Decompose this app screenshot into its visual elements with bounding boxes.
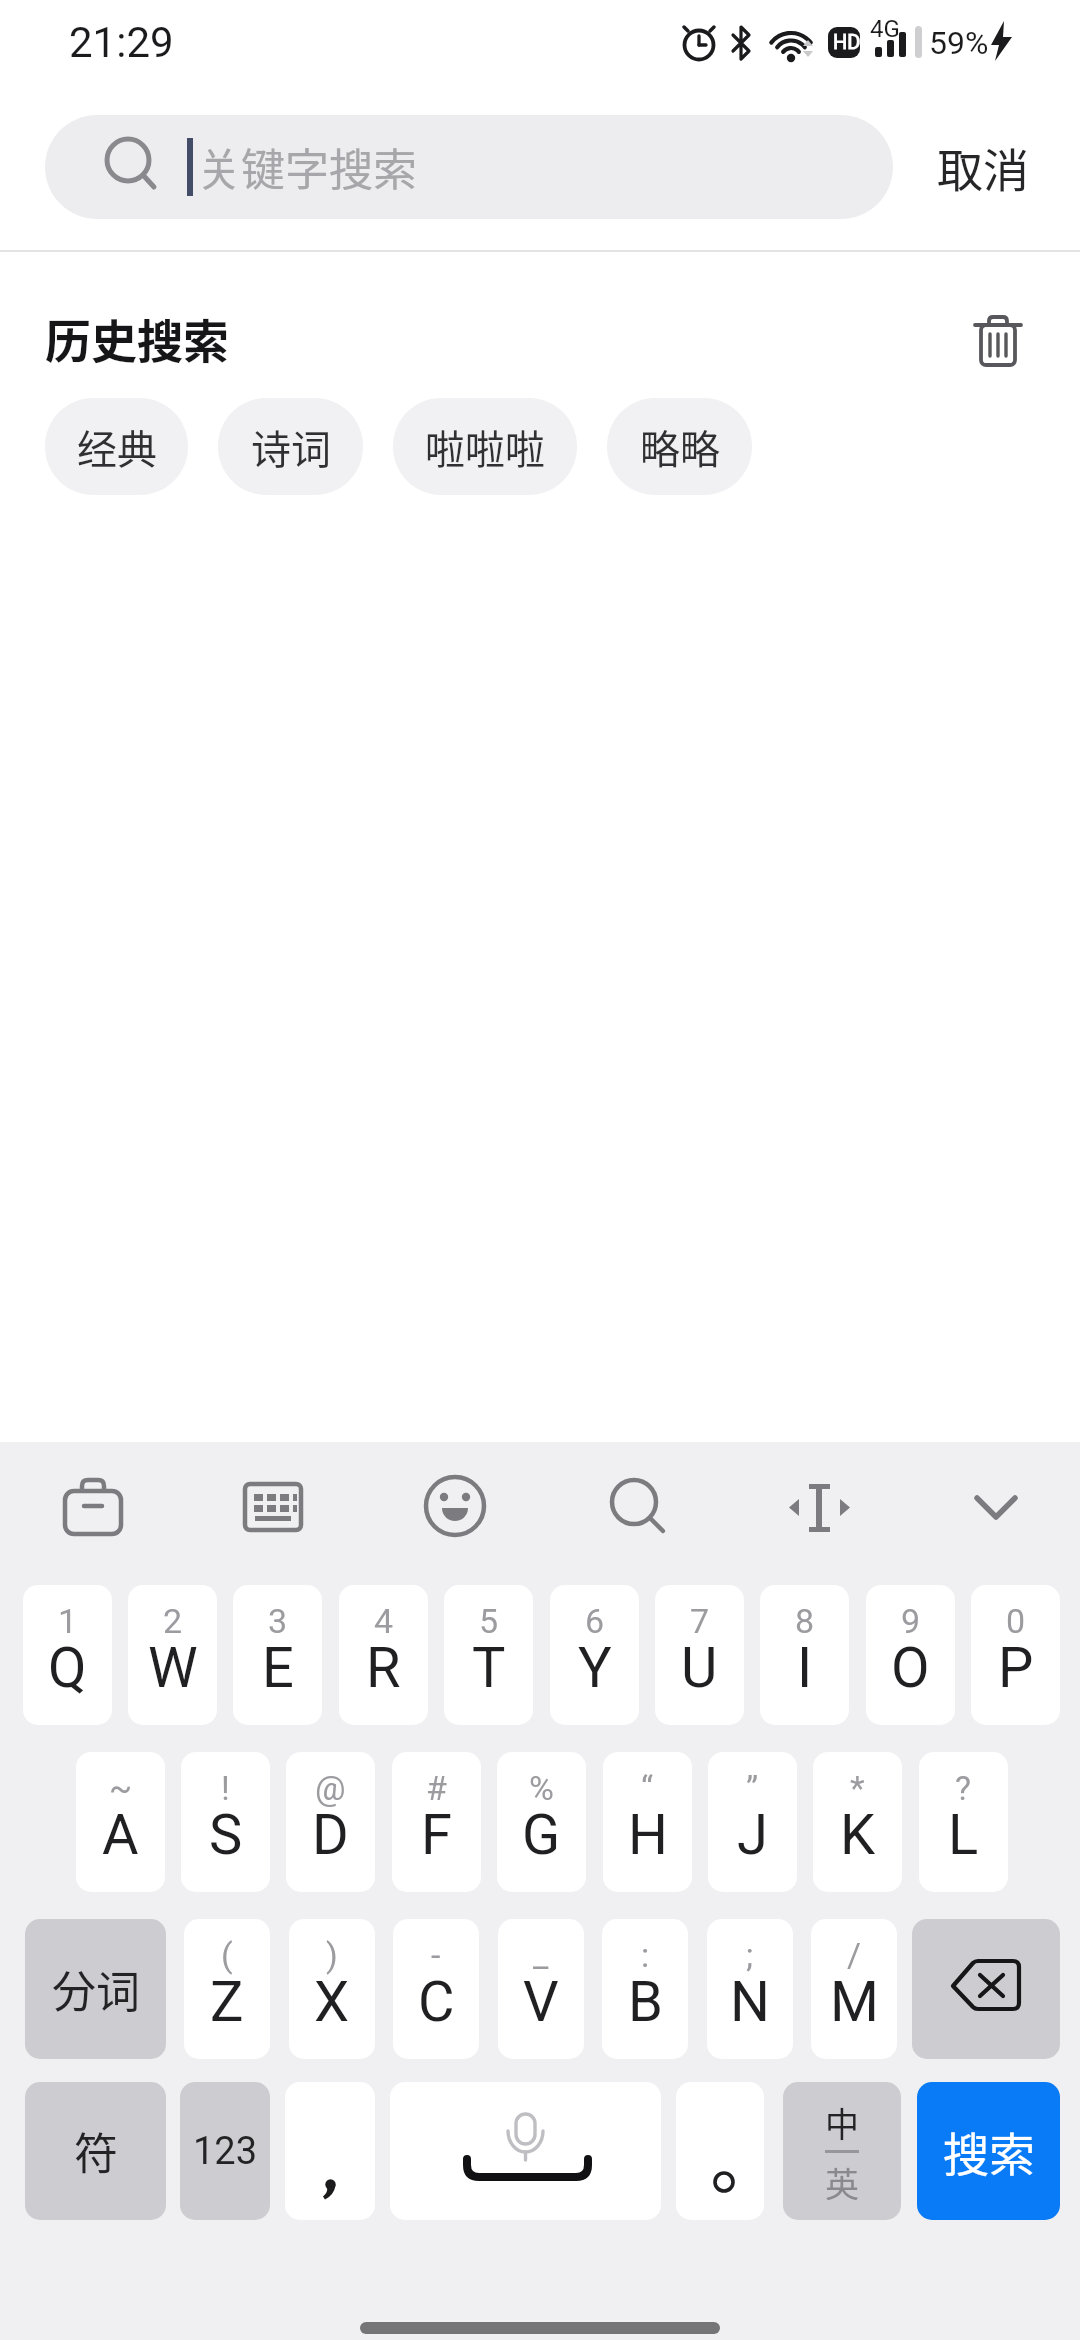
- staticText: 5: [479, 1601, 499, 1641]
- staticText: H: [628, 1802, 668, 1868]
- staticText: ”: [746, 1768, 759, 1808]
- button[interactable]: 中: [783, 2082, 901, 2220]
- button[interactable]: 分词: [25, 1919, 166, 2059]
- staticText: 符: [74, 2119, 118, 2183]
- button[interactable]: 符: [25, 2082, 166, 2220]
- button[interactable]: #: [392, 1752, 481, 1892]
- staticText: @: [315, 1768, 346, 1808]
- staticText: N: [730, 1969, 770, 2035]
- staticText: 4G: [870, 15, 900, 43]
- button[interactable]: _: [498, 1919, 584, 2059]
- button[interactable]: 3: [233, 1585, 322, 1725]
- button[interactable]: 8: [760, 1585, 849, 1725]
- button[interactable]: /: [811, 1919, 897, 2059]
- button[interactable]: 4: [339, 1585, 428, 1725]
- button[interactable]: @: [286, 1752, 375, 1892]
- staticText: M: [830, 1969, 879, 2035]
- staticText: 关键字搜索: [197, 135, 417, 199]
- staticText: C: [418, 1969, 455, 2035]
- button[interactable]: [49, 1463, 137, 1551]
- button[interactable]: 123: [180, 2082, 270, 2220]
- button[interactable]: (: [184, 1919, 270, 2059]
- button[interactable]: [676, 2082, 764, 2220]
- staticText: D: [312, 1802, 349, 1868]
- button[interactable]: [593, 1462, 681, 1550]
- button[interactable]: “: [603, 1752, 692, 1892]
- button[interactable]: 1: [23, 1585, 112, 1725]
- staticText: !: [221, 1768, 230, 1808]
- staticText: 诗词: [251, 418, 331, 476]
- button[interactable]: ”: [708, 1752, 797, 1892]
- staticText: Q: [48, 1635, 87, 1701]
- button[interactable]: %: [497, 1752, 586, 1892]
- button[interactable]: 7: [655, 1585, 744, 1725]
- button[interactable]: ~: [76, 1752, 165, 1892]
- staticText: B: [628, 1969, 663, 2035]
- staticText: G: [522, 1802, 561, 1868]
- button[interactable]: 关键字搜索: [45, 115, 893, 219]
- button[interactable]: ;: [707, 1919, 793, 2059]
- button[interactable]: 搜索: [917, 2082, 1060, 2220]
- button[interactable]: !: [181, 1752, 270, 1892]
- button[interactable]: 取消: [920, 115, 1045, 219]
- button[interactable]: -: [393, 1919, 479, 2059]
- button[interactable]: [411, 1463, 499, 1551]
- staticText: Y: [578, 1635, 612, 1701]
- button[interactable]: 5: [444, 1585, 533, 1725]
- button[interactable]: ?: [919, 1752, 1008, 1892]
- staticText: _: [533, 1935, 549, 1975]
- button[interactable]: [285, 2082, 375, 2220]
- staticText: J: [737, 1802, 768, 1868]
- button[interactable]: [229, 1463, 317, 1551]
- staticText: 历史搜索: [45, 305, 229, 372]
- button[interactable]: 诗词: [218, 398, 363, 495]
- staticText: ;: [746, 1935, 754, 1975]
- staticText: F: [421, 1802, 452, 1868]
- staticText: 8: [795, 1601, 815, 1641]
- staticText: 21:29: [69, 18, 174, 67]
- button[interactable]: 略略: [607, 398, 752, 495]
- staticText: T: [472, 1635, 506, 1701]
- staticText: 英: [825, 2158, 859, 2207]
- button[interactable]: ): [289, 1919, 375, 2059]
- button[interactable]: [912, 1919, 1060, 2059]
- staticText: 中: [825, 2098, 859, 2147]
- staticText: 略略: [640, 418, 720, 476]
- staticText: ~: [109, 1768, 133, 1808]
- button[interactable]: [390, 2082, 661, 2220]
- staticText: 取消: [937, 134, 1029, 201]
- staticText: %: [529, 1768, 554, 1808]
- staticText: /: [847, 1935, 862, 1975]
- staticText: 经典: [77, 418, 157, 476]
- staticText: 0: [1006, 1601, 1026, 1641]
- staticText: :: [641, 1935, 650, 1975]
- button[interactable]: [952, 1463, 1040, 1551]
- button[interactable]: *: [813, 1752, 902, 1892]
- staticText: *: [850, 1768, 865, 1808]
- staticText: P: [998, 1635, 1034, 1701]
- staticText: (: [221, 1935, 233, 1975]
- staticText: #: [426, 1768, 447, 1808]
- button[interactable]: 经典: [45, 398, 188, 495]
- staticText: K: [840, 1802, 876, 1868]
- staticText: O: [891, 1635, 930, 1701]
- staticText: R: [366, 1635, 401, 1701]
- staticText: 7: [690, 1601, 710, 1641]
- staticText: V: [523, 1969, 559, 2035]
- button[interactable]: 啦啦啦: [393, 398, 577, 495]
- button[interactable]: :: [602, 1919, 688, 2059]
- staticText: -: [431, 1935, 441, 1975]
- button[interactable]: 2: [128, 1585, 217, 1725]
- staticText: 59%: [929, 24, 989, 62]
- staticText: HD: [833, 30, 861, 53]
- button[interactable]: 0: [971, 1585, 1060, 1725]
- button[interactable]: [774, 1463, 862, 1551]
- button[interactable]: 6: [550, 1585, 639, 1725]
- staticText: 搜索: [943, 2118, 1035, 2185]
- button[interactable]: 9: [866, 1585, 955, 1725]
- staticText: I: [797, 1635, 813, 1701]
- button[interactable]: [968, 310, 1028, 370]
- staticText: ?: [955, 1768, 972, 1808]
- staticText: E: [262, 1635, 294, 1701]
- staticText: 2: [163, 1601, 183, 1641]
